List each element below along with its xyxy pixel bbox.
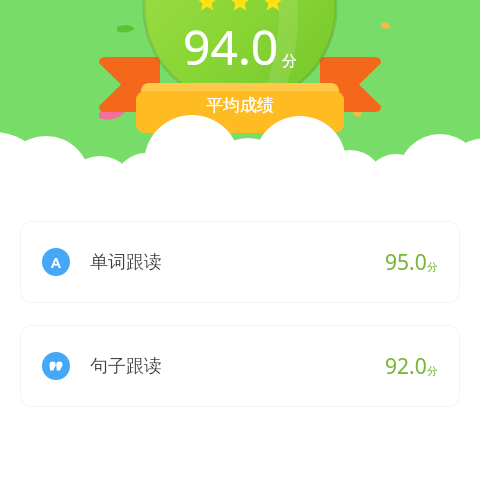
staticText: 92.0 [385,352,427,381]
staticText: 94.0 [183,14,279,79]
button[interactable]: Word practice [20,221,460,303]
staticText: 单词跟读 [90,251,162,274]
staticText: 分 [282,52,297,71]
button[interactable]: Sentence practice [20,325,460,407]
staticText: 平均成绩 [206,95,274,116]
other: Sentence practice [42,352,70,380]
staticText: 95.0 [385,248,427,277]
other: Word practice [42,248,70,276]
staticText: 分 [427,260,438,274]
staticText: 分 [427,364,438,378]
staticText: 句子跟读 [90,355,162,378]
staticText: A [51,252,61,272]
